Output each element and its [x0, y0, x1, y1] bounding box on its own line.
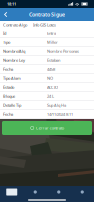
staticText: Detalle Tip	[3, 103, 21, 108]
staticText: 18:11	[7, 1, 16, 7]
staticText: Fecha	[3, 112, 13, 117]
staticText: Fecha	[3, 67, 13, 72]
staticText: Cerrar contrato	[36, 125, 64, 131]
staticText: Bloque	[3, 94, 15, 99]
staticText: Contrato Sigue	[29, 11, 65, 18]
staticText: NO	[47, 76, 53, 81]
staticText: Tipo	[3, 40, 10, 45]
staticText: 14/11/2024 8:11	[47, 112, 73, 117]
staticText: Entra	[47, 31, 56, 36]
button[interactable]: Info GIS Lotes	[30, 21, 59, 29]
staticText: 4458	[47, 67, 55, 72]
button[interactable]: Map	[0, 186, 23, 198]
staticText: Sup Alq Ha	[47, 103, 66, 108]
staticText: Contrato Algo	[3, 22, 27, 28]
staticText: Miller	[47, 40, 58, 45]
staticText: 24 L	[47, 94, 54, 99]
button[interactable]: Cerrar contrato	[2, 121, 92, 135]
button[interactable]: Tab	[23, 186, 47, 198]
staticText: Id	[3, 31, 6, 36]
staticText: Nombre/Alq	[3, 49, 25, 54]
staticText: Nombre Personas	[47, 49, 79, 54]
staticText: Estado	[3, 85, 14, 90]
button[interactable]: Tab	[70, 186, 94, 198]
button[interactable]: Contrato Algo	[0, 21, 30, 29]
staticText: Nombre Ley	[3, 58, 25, 63]
staticText: ACCIO	[47, 85, 58, 90]
staticText: Estaban	[47, 58, 60, 63]
staticText: Info GIS Lotes	[33, 22, 56, 28]
button[interactable]: Tab	[47, 186, 70, 198]
button[interactable]: Back	[0, 8, 12, 21]
staticText: Tipo Alam	[3, 76, 21, 81]
